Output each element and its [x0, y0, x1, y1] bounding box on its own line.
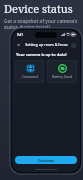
button[interactable]: Back	[15, 41, 23, 49]
button[interactable]: Close	[69, 41, 77, 49]
staticText: 9:41	[17, 33, 23, 37]
button[interactable]: Continue	[15, 156, 77, 164]
staticText: Connected	[22, 75, 38, 79]
button[interactable]: Battery Good	[47, 60, 77, 83]
staticText: status during install	[4, 24, 50, 30]
staticText: Continue	[38, 158, 55, 163]
staticText: Your camera is up to date!	[16, 52, 67, 57]
button[interactable]: Connected	[15, 60, 44, 83]
staticText: Device status	[4, 1, 73, 16]
staticText: Battery Good	[52, 75, 72, 79]
staticText: Get a snapshot of your camera's	[4, 18, 78, 24]
staticText: Setting up room & focus	[25, 42, 68, 47]
